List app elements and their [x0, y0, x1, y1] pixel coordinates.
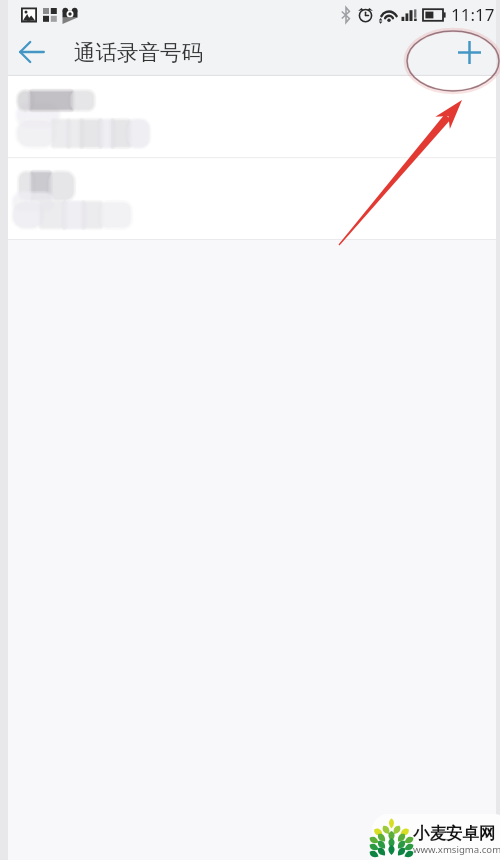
staticText: 通话录音号码	[74, 39, 203, 66]
button[interactable]	[0, 76, 500, 155]
button[interactable]: Back	[0, 28, 64, 76]
staticText: www.xmsigma.com	[413, 843, 500, 856]
button[interactable]	[0, 155, 500, 239]
staticText: 11:17	[451, 3, 495, 26]
button[interactable]: Add	[438, 28, 500, 76]
staticText: 小麦安卓网	[413, 823, 495, 844]
